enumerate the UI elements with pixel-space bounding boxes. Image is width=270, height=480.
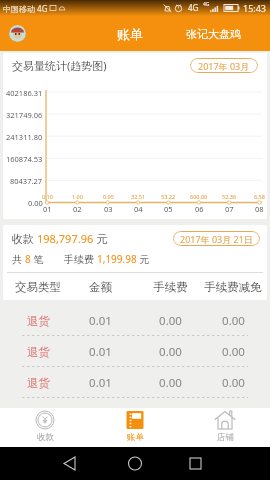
staticText: 15:43 (243, 2, 267, 14)
staticText: 402186.31 (6, 88, 43, 97)
staticText: 52.36 (222, 193, 237, 200)
staticText: 0.00 (28, 198, 43, 207)
staticText: 共 (12, 252, 25, 266)
staticText: 4G (188, 2, 199, 13)
staticText: 0.01 (89, 313, 112, 329)
staticText: 2017年 03月 21日 (180, 233, 253, 245)
button[interactable]: 退货 (0, 367, 270, 398)
staticText: 0.00 (159, 375, 182, 391)
staticText: 手续费 (64, 252, 97, 266)
staticText: 160874.53 (6, 154, 43, 163)
staticText: 交易类型 (15, 280, 61, 294)
staticText: 80437.27 (10, 176, 43, 185)
staticText: 4G (203, 1, 210, 8)
staticText: 元 (137, 252, 150, 266)
staticText: 05 (164, 204, 173, 214)
staticText: 07 (225, 204, 234, 214)
staticText: 张记大盘鸡 (186, 27, 241, 41)
staticText: 手续费减免 (204, 280, 262, 294)
staticText: 0.10 (42, 193, 53, 200)
staticText: 1,199.98 (97, 252, 137, 266)
staticText: 0.00 (159, 313, 182, 329)
button[interactable]: 收款 (0, 408, 90, 447)
staticText: 0.00 (222, 313, 245, 329)
staticText: 03 (104, 204, 113, 214)
staticText: 6.58 (254, 193, 265, 200)
staticText: 退货 (27, 345, 50, 359)
staticText: 2017年 03月 (198, 60, 250, 72)
staticText: 0.01 (89, 344, 112, 360)
staticText: 交易量统计(趋势图) (12, 58, 107, 73)
staticText: 账单 (117, 26, 143, 42)
staticText: 账单 (127, 432, 144, 443)
staticText: 笔 (31, 252, 44, 266)
staticText: 退货 (27, 376, 50, 390)
button[interactable]: 2017年 03月 21日 (173, 231, 260, 246)
staticText: 01 (43, 204, 52, 214)
staticText: 321749.06 (6, 110, 43, 119)
staticText: 店铺 (217, 432, 234, 443)
staticText: 0.00 (159, 344, 182, 360)
staticText: 退货 (27, 314, 50, 328)
staticText: 1.00 (72, 193, 83, 200)
button[interactable]: 账单 (90, 408, 180, 447)
staticText: 8 (25, 252, 31, 266)
staticText: 0.00 (222, 375, 245, 391)
staticText: 0.00 (222, 344, 245, 360)
button[interactable]: Profile (9, 25, 26, 42)
button[interactable]: 退货 (0, 305, 270, 336)
staticText: 金额 (89, 280, 112, 294)
staticText: 02 (73, 204, 82, 214)
staticText: 32.51 (131, 193, 146, 200)
staticText: 06 (195, 204, 204, 214)
staticText: 手续费 (153, 280, 188, 294)
staticText: 600.00 (190, 193, 208, 200)
staticText: 53.22 (161, 193, 176, 200)
button[interactable]: 退货 (0, 336, 270, 367)
staticText: 04 (134, 204, 143, 214)
staticText: 0.95 (103, 193, 114, 200)
staticText: 收款 (12, 231, 37, 246)
staticText: 241311.80 (6, 132, 43, 141)
staticText: 0.01 (89, 375, 112, 391)
staticText: 元 (94, 231, 108, 246)
staticText: 中国移动 4G (3, 3, 48, 14)
button[interactable]: 2017年 03月 (190, 58, 258, 73)
button[interactable]: 店铺 (180, 408, 270, 447)
staticText: 08 (255, 204, 264, 214)
staticText: 收款 (37, 432, 54, 443)
staticText: 198,797.96 (37, 231, 94, 246)
